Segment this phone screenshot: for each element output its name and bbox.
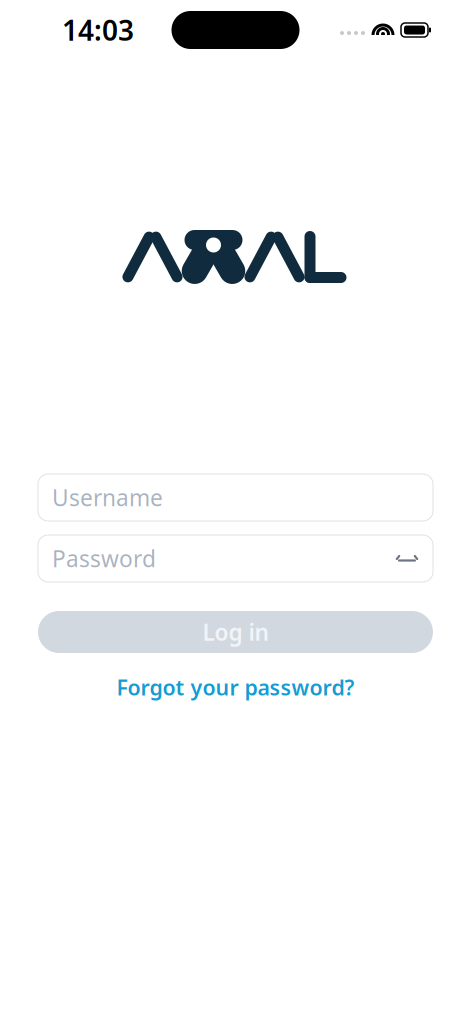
button[interactable]: Log in	[38, 611, 433, 653]
button[interactable]: Show password	[395, 546, 419, 570]
staticText: 14:03	[62, 11, 134, 49]
staticText: Password	[52, 543, 156, 573]
button[interactable]: Forgot your password?	[104, 667, 366, 707]
staticText: Log in	[202, 617, 268, 647]
button[interactable]: Username	[38, 474, 433, 521]
staticText: Username	[52, 482, 163, 512]
button[interactable]: Password	[38, 535, 433, 582]
staticText: Forgot your password?	[116, 673, 354, 701]
